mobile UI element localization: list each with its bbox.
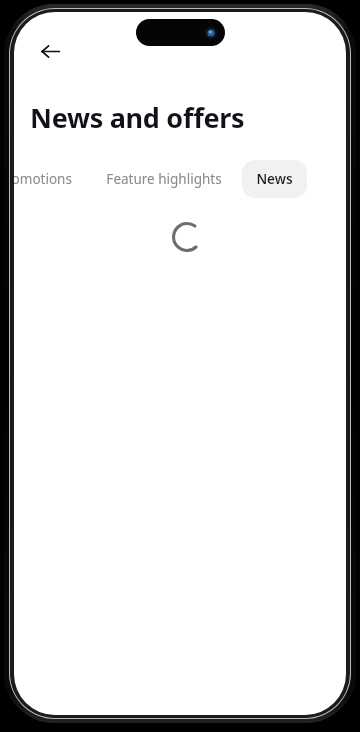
staticText: Feature highlights xyxy=(106,170,222,188)
staticText: News xyxy=(256,170,293,188)
staticText: Promotions xyxy=(14,170,72,188)
staticText: News and offers xyxy=(30,99,245,136)
button[interactable]: Promotions xyxy=(14,160,86,198)
button[interactable]: Feature highlights xyxy=(92,160,236,198)
button[interactable]: Back xyxy=(26,27,74,75)
button[interactable]: News xyxy=(242,160,307,198)
